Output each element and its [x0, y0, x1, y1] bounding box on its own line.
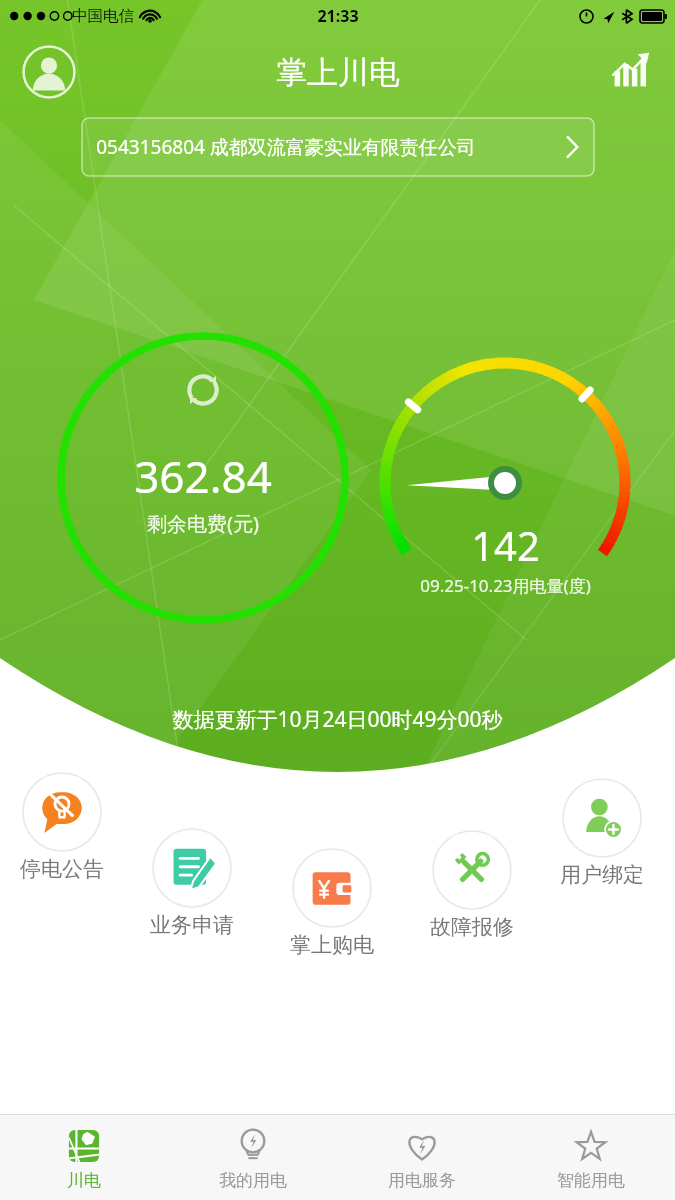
staticText: 智能用电 [557, 1170, 625, 1191]
staticText: 川电 [67, 1170, 101, 1191]
button[interactable]: 川电 [0, 1115, 168, 1200]
button[interactable]: 智能用电 [506, 1115, 675, 1200]
staticText: 09.25-10.23用电量(度) [420, 574, 591, 597]
staticText: 0543156804 成都双流富豪实业有限责任公司 [96, 134, 476, 160]
staticText: 故障报修 [430, 914, 514, 940]
staticText: 掌上购电 [290, 932, 374, 958]
staticText: 掌上川电 [276, 53, 400, 92]
button[interactable]: 用户绑定 [544, 778, 660, 898]
button[interactable]: 故障报修 [414, 830, 530, 950]
staticText: 我的用电 [219, 1170, 287, 1191]
staticText: 用户绑定 [560, 862, 644, 888]
button[interactable]: Statistics [605, 48, 653, 96]
button[interactable]: 掌上购电 [274, 848, 390, 968]
staticText: 中国电信 [72, 6, 134, 26]
staticText: 业务申请 [150, 912, 234, 938]
button[interactable]: Profile [22, 45, 76, 99]
button[interactable]: 业务申请 [134, 828, 250, 948]
button[interactable]: 用电服务 [337, 1115, 506, 1200]
staticText: 剩余电费(元) [147, 510, 259, 537]
staticText: 142 [471, 518, 540, 572]
button[interactable]: 0543156804 成都双流富豪实业有限责任公司 [82, 118, 594, 176]
staticText: 数据更新于10月24日00时49分00秒 [172, 705, 503, 734]
staticText: 362.84 [134, 446, 272, 506]
staticText: 用电服务 [388, 1170, 456, 1191]
button[interactable]: 我的用电 [168, 1115, 337, 1200]
staticText: 停电公告 [20, 856, 104, 882]
staticText: 21:33 [317, 5, 359, 27]
button[interactable]: 停电公告 [4, 772, 120, 892]
